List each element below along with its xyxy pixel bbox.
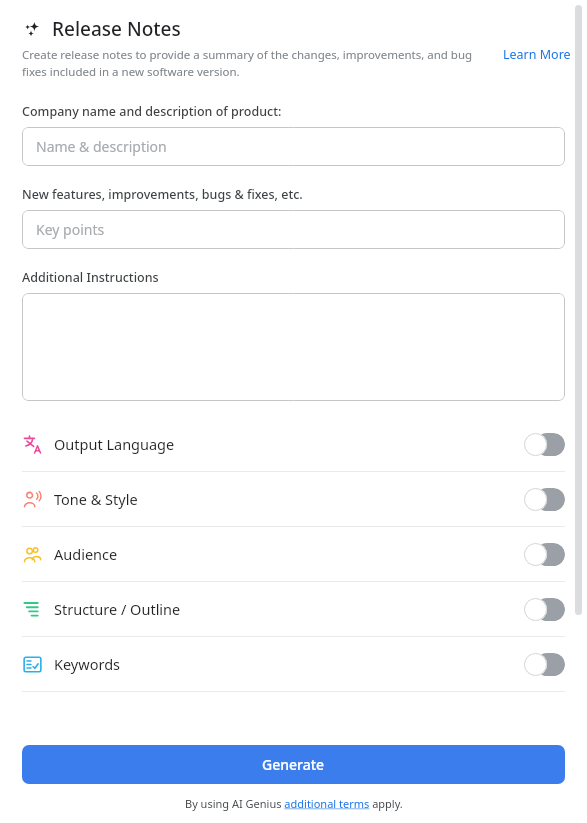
button[interactable]: Learn More [503, 46, 571, 63]
staticText: Structure / Outline [54, 599, 181, 619]
staticText: Keywords [54, 654, 120, 674]
button[interactable]: Toggle [523, 488, 565, 511]
staticText: Audience [54, 544, 118, 564]
staticText: Release Notes [52, 16, 181, 42]
button[interactable]: Generate [22, 745, 565, 784]
staticText: Company name and description of product: [22, 103, 282, 120]
staticText: Key points [36, 220, 105, 239]
staticText: Tone & Style [54, 489, 138, 509]
button[interactable]: Audience [0, 527, 587, 581]
staticText: Create release notes to provide a summar… [22, 47, 499, 79]
button[interactable]: Output Language [0, 417, 587, 471]
staticText: Generate [262, 755, 325, 774]
staticText: Additional Instructions [22, 269, 159, 286]
button[interactable]: Toggle [523, 543, 565, 566]
staticText: By using AI Genius additional terms appl… [185, 796, 403, 811]
staticText: Learn More [503, 46, 571, 63]
button[interactable]: Name & description [22, 127, 565, 166]
button[interactable]: Toggle [523, 433, 565, 456]
staticText: Output Language [54, 434, 175, 454]
button[interactable]: Keywords [0, 637, 587, 691]
button[interactable]: Tone & Style [0, 472, 587, 526]
button[interactable]: Toggle [523, 653, 565, 676]
button[interactable]: Structure / Outline [0, 582, 587, 636]
button[interactable]: Toggle [523, 598, 565, 621]
button[interactable]: Key points [22, 210, 565, 249]
button[interactable] [22, 293, 565, 401]
staticText: Name & description [36, 137, 167, 156]
staticText: New features, improvements, bugs & fixes… [22, 186, 303, 203]
